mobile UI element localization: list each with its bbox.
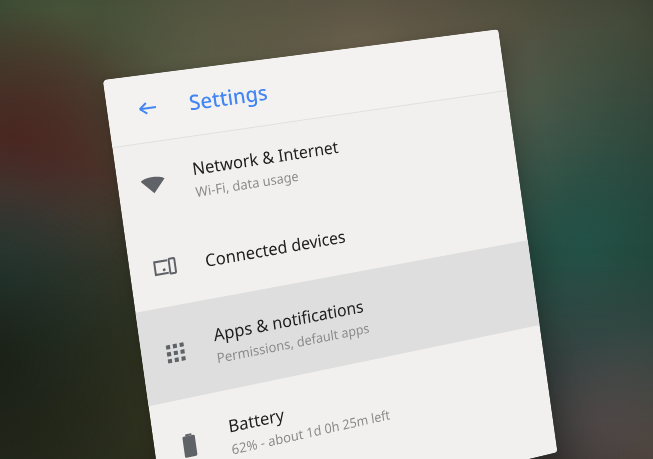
staticText: Settings [187, 78, 269, 117]
button[interactable]: Battery [148, 325, 552, 459]
staticText: Wi-Fi, data usage [194, 167, 300, 201]
staticText: Network & Internet [191, 135, 340, 180]
button[interactable]: Connected devices [124, 168, 528, 313]
staticText: 62% - about 1d 0h 25m left [230, 406, 392, 459]
staticText: Apps & notifications [212, 295, 365, 346]
button[interactable]: Network & Internet [112, 91, 518, 233]
staticText: Connected devices [204, 225, 348, 272]
button[interactable]: Apps & notifications [135, 240, 540, 406]
staticText: Permissions, default apps [216, 319, 370, 367]
button[interactable]: Back [125, 85, 170, 131]
staticText: Battery [227, 403, 286, 438]
